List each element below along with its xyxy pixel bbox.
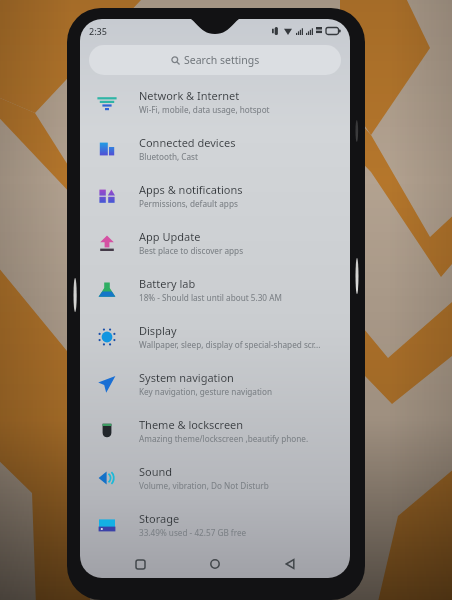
staticText: 18% - Should last until about 5.30 AM <box>139 292 282 303</box>
staticText: Wallpaper, sleep, display of special-sha… <box>139 339 321 350</box>
staticText: System navigation <box>139 370 234 385</box>
staticText: Sound <box>139 464 173 479</box>
button[interactable]: Storage <box>80 501 350 548</box>
staticText: Network & Internet <box>139 88 240 103</box>
staticText: Theme & lockscreen <box>139 417 244 432</box>
button[interactable]: Battery lab <box>80 266 350 313</box>
button[interactable]: App Update <box>80 219 350 266</box>
staticText: Bluetooth, Cast <box>139 151 198 162</box>
staticText: Volume, vibration, Do Not Disturb <box>139 480 269 491</box>
staticText: Best place to discover apps <box>139 245 244 256</box>
staticText: Search settings <box>184 53 260 67</box>
staticText: Display <box>139 323 177 338</box>
button[interactable]: Recent apps <box>125 550 155 578</box>
button[interactable]: Search settings <box>89 45 341 75</box>
staticText: 2:35 <box>89 25 107 37</box>
button[interactable]: Display <box>80 313 350 360</box>
button[interactable]: Connected devices <box>80 125 350 172</box>
button[interactable]: Back <box>275 550 305 578</box>
button[interactable]: Theme & lockscreen <box>80 407 350 454</box>
staticText: Key navigation, gesture navigation <box>139 386 272 397</box>
staticText: Battery lab <box>139 276 196 291</box>
button[interactable]: Apps & notifications <box>80 172 350 219</box>
staticText: Apps & notifications <box>139 182 243 197</box>
button[interactable]: Home <box>200 550 230 578</box>
button[interactable]: Sound <box>80 454 350 501</box>
staticText: Storage <box>139 511 180 526</box>
staticText: Amazing theme/lockscreen ,beautify phone… <box>139 433 309 444</box>
button[interactable]: Network & Internet <box>80 78 350 125</box>
button[interactable]: System navigation <box>80 360 350 407</box>
staticText: Connected devices <box>139 135 236 150</box>
staticText: Permissions, default apps <box>139 198 238 209</box>
staticText: App Update <box>139 229 201 244</box>
staticText: Wi-Fi, mobile, data usage, hotspot <box>139 104 270 115</box>
staticText: 33.49% used - 42.57 GB free <box>139 527 247 538</box>
